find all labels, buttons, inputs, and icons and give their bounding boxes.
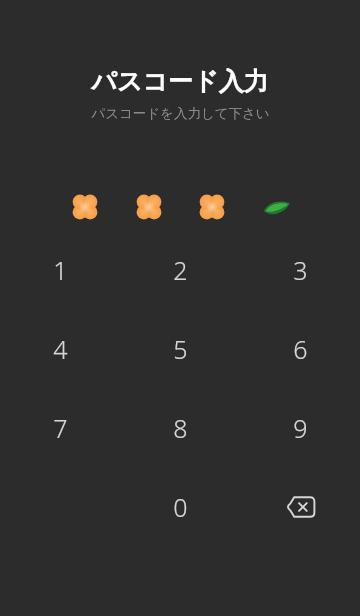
button[interactable]: 7 — [0, 388, 120, 467]
staticText: 3 — [293, 253, 308, 287]
button[interactable]: 6 — [240, 309, 360, 388]
button[interactable]: 9 — [240, 388, 360, 467]
staticText: 1 — [53, 253, 68, 287]
button[interactable]: 2 — [120, 230, 240, 309]
button[interactable]: 5 — [120, 309, 240, 388]
staticText: 5 — [173, 332, 188, 366]
staticText: パスコード入力 — [91, 66, 269, 97]
staticText: 9 — [293, 411, 308, 445]
staticText: 2 — [173, 253, 188, 287]
staticText: 7 — [53, 411, 68, 445]
staticText: 4 — [53, 332, 68, 366]
staticText: 0 — [173, 490, 188, 524]
button[interactable]: Delete — [240, 467, 360, 546]
staticText: 6 — [293, 332, 308, 366]
staticText: パスコードを入力して下さい — [91, 105, 270, 122]
button[interactable]: 0 — [120, 467, 240, 546]
button[interactable]: 3 — [240, 230, 360, 309]
button[interactable]: 1 — [0, 230, 120, 309]
staticText: 8 — [173, 411, 188, 445]
button[interactable]: 8 — [120, 388, 240, 467]
button[interactable]: 4 — [0, 309, 120, 388]
